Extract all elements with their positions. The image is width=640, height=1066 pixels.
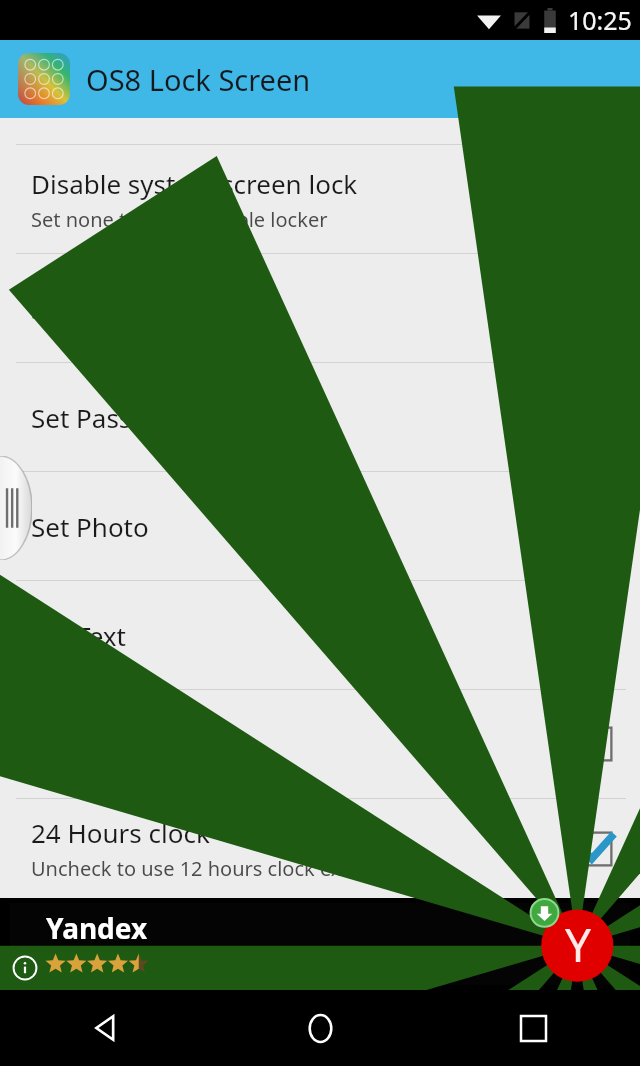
staticText: Set Wallpaper [31, 291, 200, 326]
staticText: Set Password [31, 400, 194, 435]
button[interactable]: Set Photo [0, 472, 640, 580]
button[interactable]: Unchecked [572, 721, 618, 767]
button[interactable]: Set Password [0, 363, 640, 471]
button[interactable]: Back [0, 990, 214, 1066]
staticText: System status bar [31, 727, 249, 762]
button[interactable]: System status bar [0, 690, 640, 798]
button[interactable]: Set Wallpaper [0, 254, 640, 362]
staticText: Disable system screen lock [31, 166, 358, 201]
staticText: 24 Hours clock [31, 815, 210, 850]
button[interactable]: 24 Hours clock [0, 799, 640, 898]
staticText: 10:25 [568, 3, 632, 37]
staticText: Set Text [31, 618, 127, 653]
button[interactable]: Home [214, 990, 427, 1066]
button[interactable]: Disable system screen lock [0, 145, 640, 253]
button[interactable]: Set Text [0, 581, 640, 689]
staticText: Set Photo [31, 509, 149, 544]
staticText: Yandex [46, 909, 148, 947]
button[interactable]: Recent apps [427, 990, 640, 1066]
button[interactable]: Yandex advertisement [10, 903, 630, 985]
staticText: Uncheck to use 12 hours clock ex : 11:30… [31, 855, 445, 882]
button[interactable]: Open drawer [0, 456, 32, 560]
staticText: Y [565, 913, 592, 976]
staticText: OS8 Lock Screen [86, 60, 311, 99]
button[interactable]: Checked [572, 826, 618, 872]
staticText: Set none to avoid double locker [31, 206, 328, 233]
